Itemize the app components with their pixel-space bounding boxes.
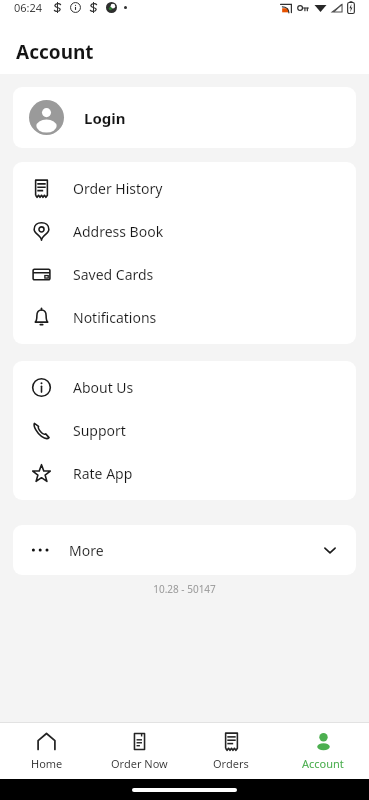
staticText: Login — [84, 108, 126, 128]
button[interactable]: Account — [277, 725, 369, 777]
staticText: About Us — [73, 378, 134, 397]
staticText: Account — [16, 39, 94, 65]
button[interactable]: Notifications — [13, 296, 356, 339]
button[interactable]: More — [13, 525, 356, 575]
button[interactable]: Rate App — [13, 452, 356, 495]
button[interactable]: Saved Cards — [13, 253, 356, 296]
staticText: Saved Cards — [73, 265, 154, 284]
button[interactable]: Order Now — [93, 725, 185, 777]
staticText: Address Book — [73, 222, 164, 241]
button[interactable]: Order History — [13, 167, 356, 210]
staticText: Support — [73, 421, 126, 440]
button[interactable]: Support — [13, 409, 356, 452]
staticText: Notifications — [73, 308, 157, 327]
button[interactable]: Orders — [185, 725, 277, 777]
staticText: 06:24 — [14, 0, 43, 15]
button[interactable]: About Us — [13, 366, 356, 409]
staticText: 10.28 - 50147 — [0, 582, 369, 596]
staticText: Order History — [73, 179, 163, 198]
staticText: Orders — [213, 756, 249, 771]
staticText: Account — [302, 756, 344, 771]
staticText: Order Now — [111, 756, 168, 771]
staticText: Rate App — [73, 464, 133, 483]
staticText: More — [69, 541, 104, 560]
button[interactable]: Address Book — [13, 210, 356, 253]
staticText: Home — [31, 756, 63, 771]
button[interactable]: Login — [13, 87, 356, 148]
button[interactable]: Home — [0, 725, 93, 777]
